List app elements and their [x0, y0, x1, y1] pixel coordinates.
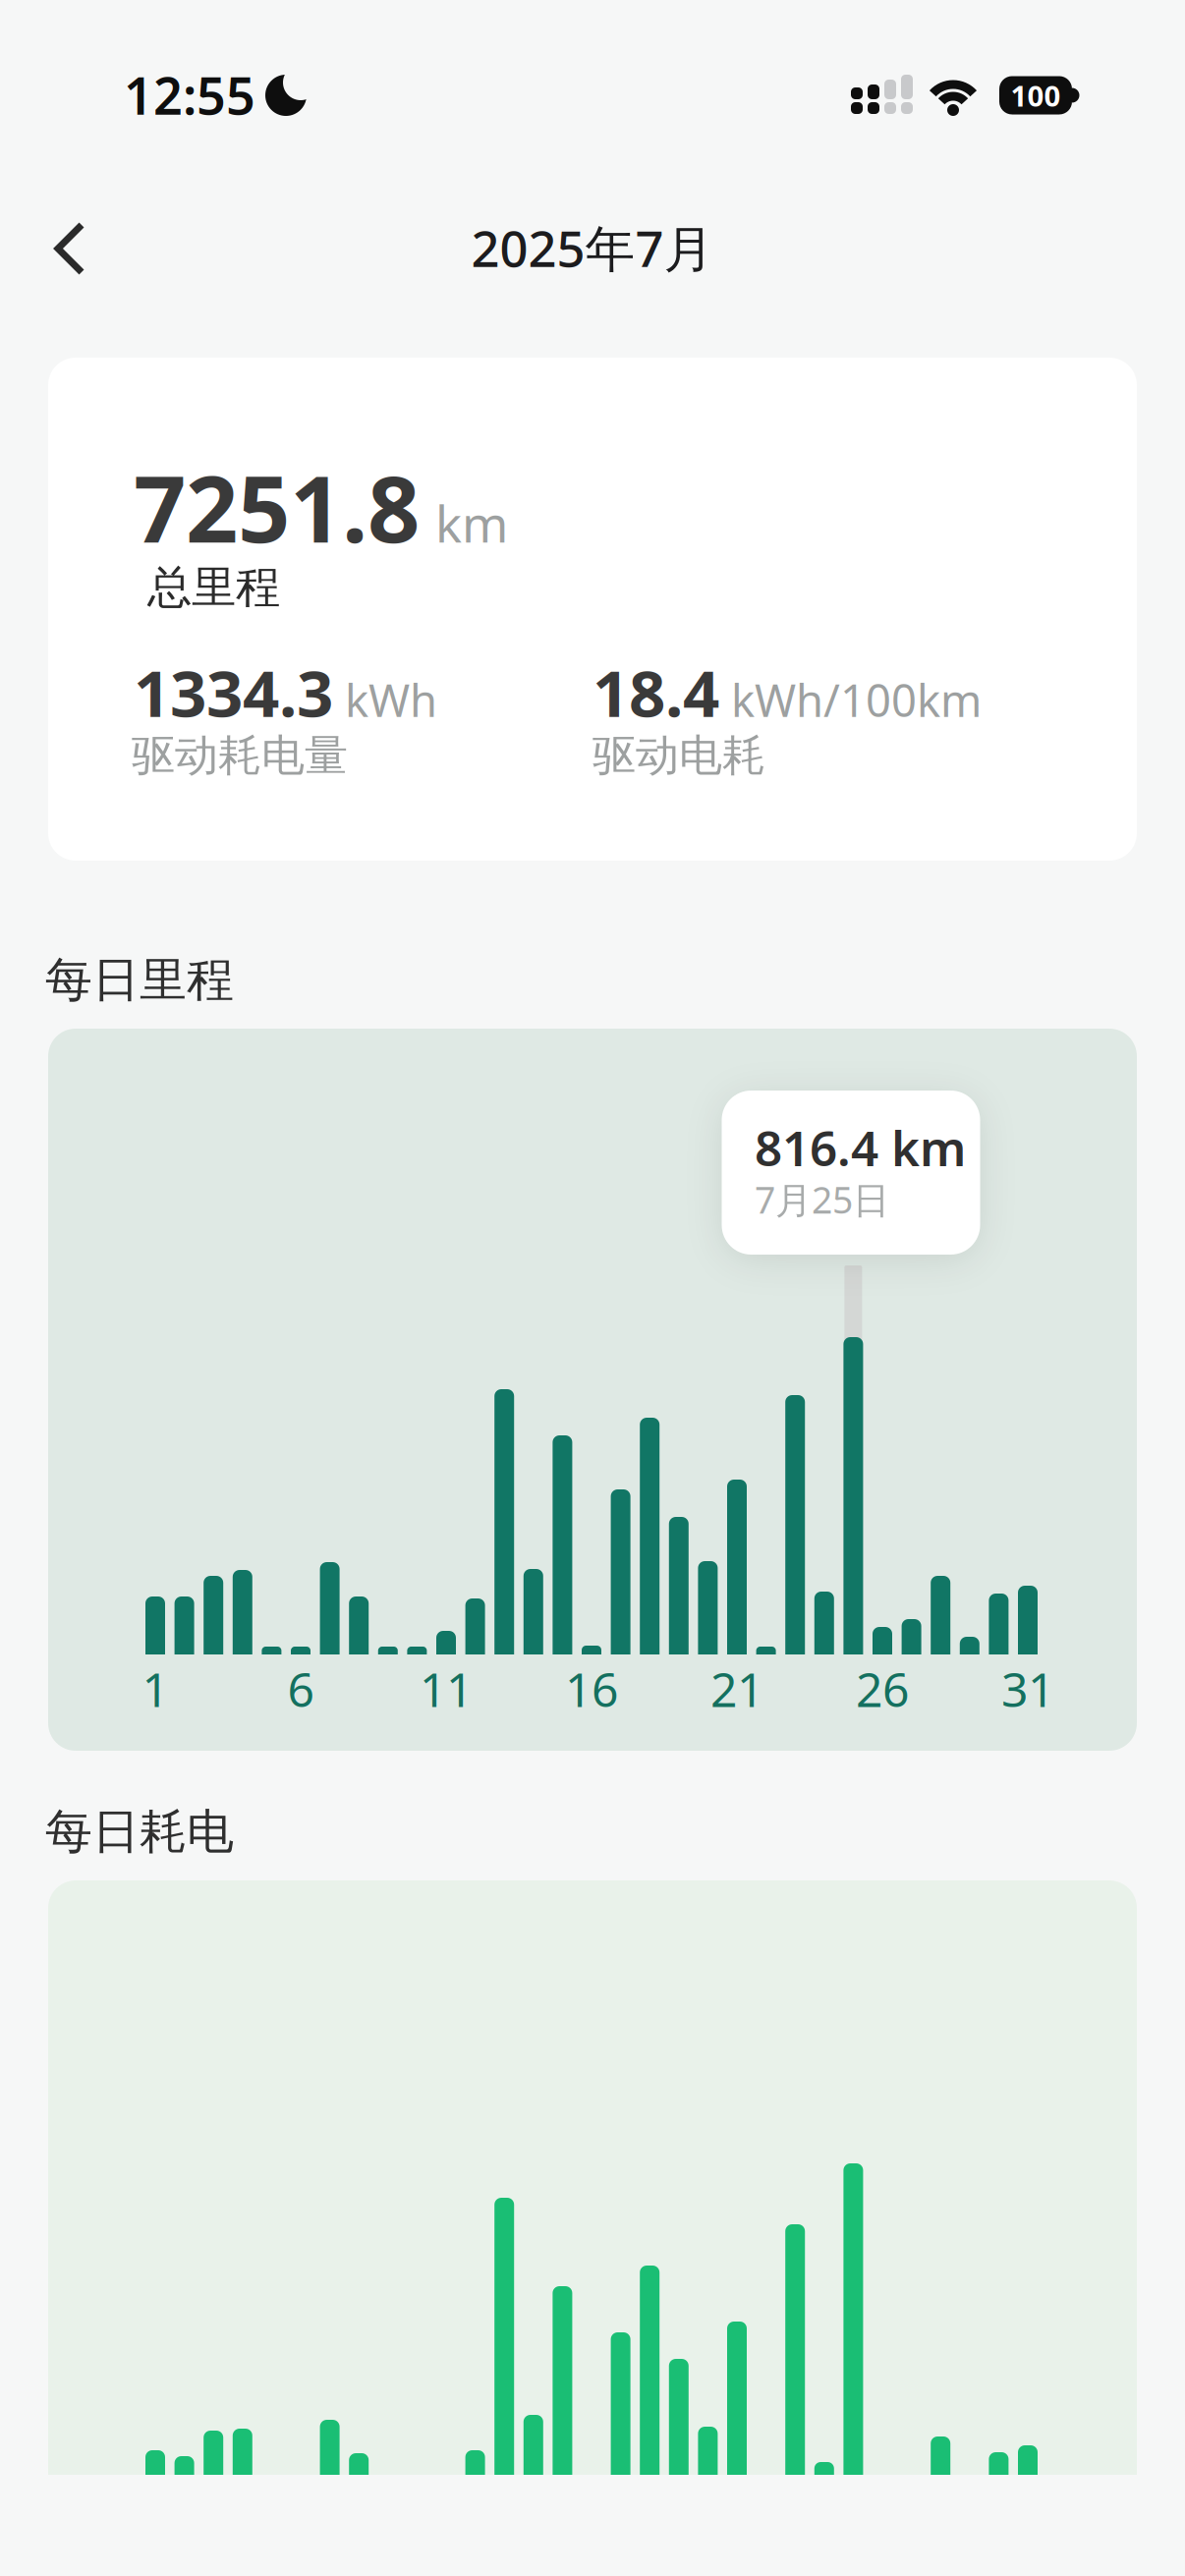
button[interactable]: Back — [36, 212, 109, 285]
staticText: 总里程 — [147, 560, 280, 615]
staticText: 11 — [420, 1658, 473, 1720]
staticText: 816.4 km — [755, 1115, 966, 1179]
staticText: 100 — [1011, 76, 1061, 114]
staticText: 26 — [856, 1658, 909, 1720]
staticText: 16 — [565, 1658, 618, 1720]
staticText: 18.4 — [592, 649, 719, 735]
staticText: 每日里程 — [45, 951, 234, 1009]
staticText: 6 — [287, 1658, 314, 1720]
staticText: 7251.8 — [134, 446, 420, 568]
staticText: 驱动耗电量 — [132, 729, 348, 782]
staticText: kWh/100km — [731, 670, 982, 729]
staticText: 21 — [710, 1658, 763, 1720]
staticText: 1 — [142, 1658, 169, 1720]
staticText: 每日耗电 — [45, 1803, 234, 1861]
staticText: 7月25日 — [755, 1175, 889, 1224]
staticText: kWh — [345, 670, 437, 729]
staticText: 驱动电耗 — [592, 729, 765, 782]
staticText: 2025年7月 — [471, 215, 714, 281]
staticText: 1334.3 — [134, 649, 333, 735]
staticText: 31 — [1001, 1658, 1054, 1720]
staticText: km — [435, 490, 508, 556]
staticText: 12:55 — [124, 61, 255, 129]
